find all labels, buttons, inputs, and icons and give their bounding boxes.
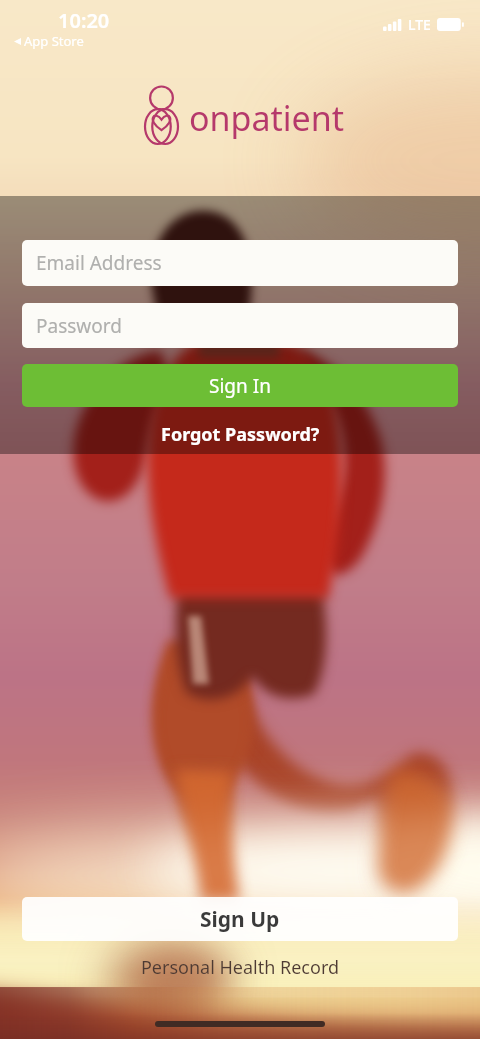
button[interactable]: Email Address — [22, 240, 458, 286]
staticText: Sign In — [209, 373, 271, 399]
staticText: Password — [36, 313, 122, 339]
button[interactable]: Sign Up — [22, 897, 458, 941]
staticText: onpatient — [189, 95, 345, 141]
staticText: LTE — [408, 15, 431, 34]
staticText: Personal Health Record — [0, 955, 480, 980]
staticText: Forgot Password? — [161, 422, 320, 447]
staticText: Email Address — [36, 250, 162, 276]
staticText: App Store — [24, 32, 84, 50]
staticText: Sign Up — [200, 905, 280, 934]
button[interactable]: Sign In — [22, 364, 458, 407]
staticText: 10:20 — [58, 7, 110, 34]
button[interactable]: Forgot Password? — [151, 418, 330, 451]
button[interactable]: Password — [22, 303, 458, 348]
